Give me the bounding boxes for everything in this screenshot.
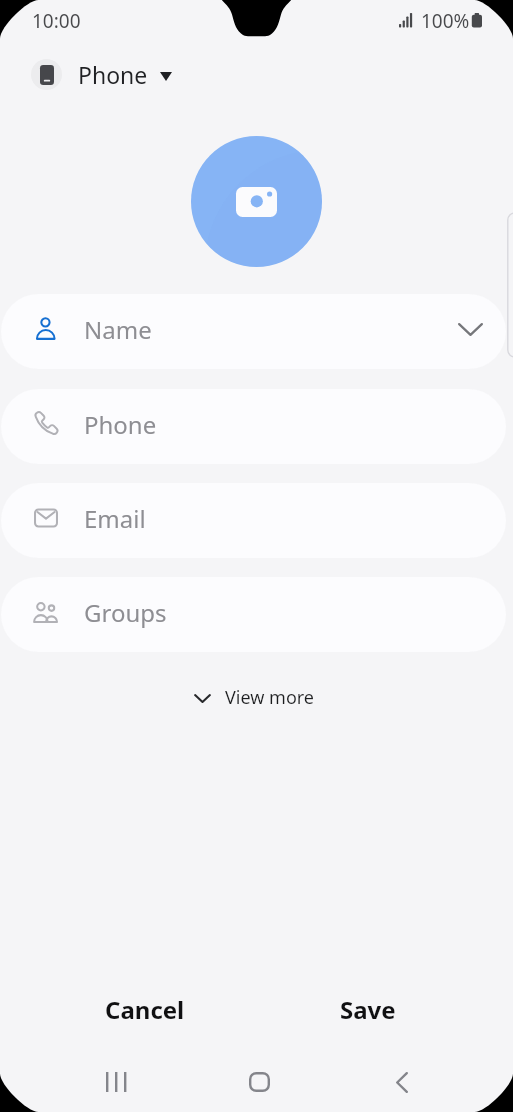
button[interactable]: Add photo (191, 136, 322, 267)
staticText: Phone (78, 59, 148, 90)
staticText: Name (84, 313, 152, 346)
button[interactable]: Phone (31, 59, 172, 90)
button[interactable]: Email (1, 483, 506, 558)
button[interactable]: Home (224, 1057, 294, 1107)
button[interactable]: Recent apps (81, 1057, 151, 1107)
staticText: Email (84, 502, 146, 535)
button[interactable]: Back (367, 1057, 437, 1107)
button[interactable]: Groups (1, 577, 506, 652)
staticText: 10:00 (32, 8, 81, 34)
staticText: Cancel (105, 993, 185, 1026)
button[interactable]: Save (318, 983, 418, 1035)
staticText: Phone (84, 408, 157, 441)
button[interactable]: Expand name fields (446, 307, 495, 356)
staticText: View more (225, 685, 315, 710)
button[interactable]: Name (1, 294, 506, 369)
staticText: 100% (421, 8, 470, 34)
staticText: Groups (84, 596, 167, 629)
button[interactable]: View more (187, 679, 322, 716)
button[interactable]: Phone (1, 389, 506, 464)
staticText: Save (340, 993, 396, 1026)
button[interactable]: Cancel (88, 983, 202, 1035)
